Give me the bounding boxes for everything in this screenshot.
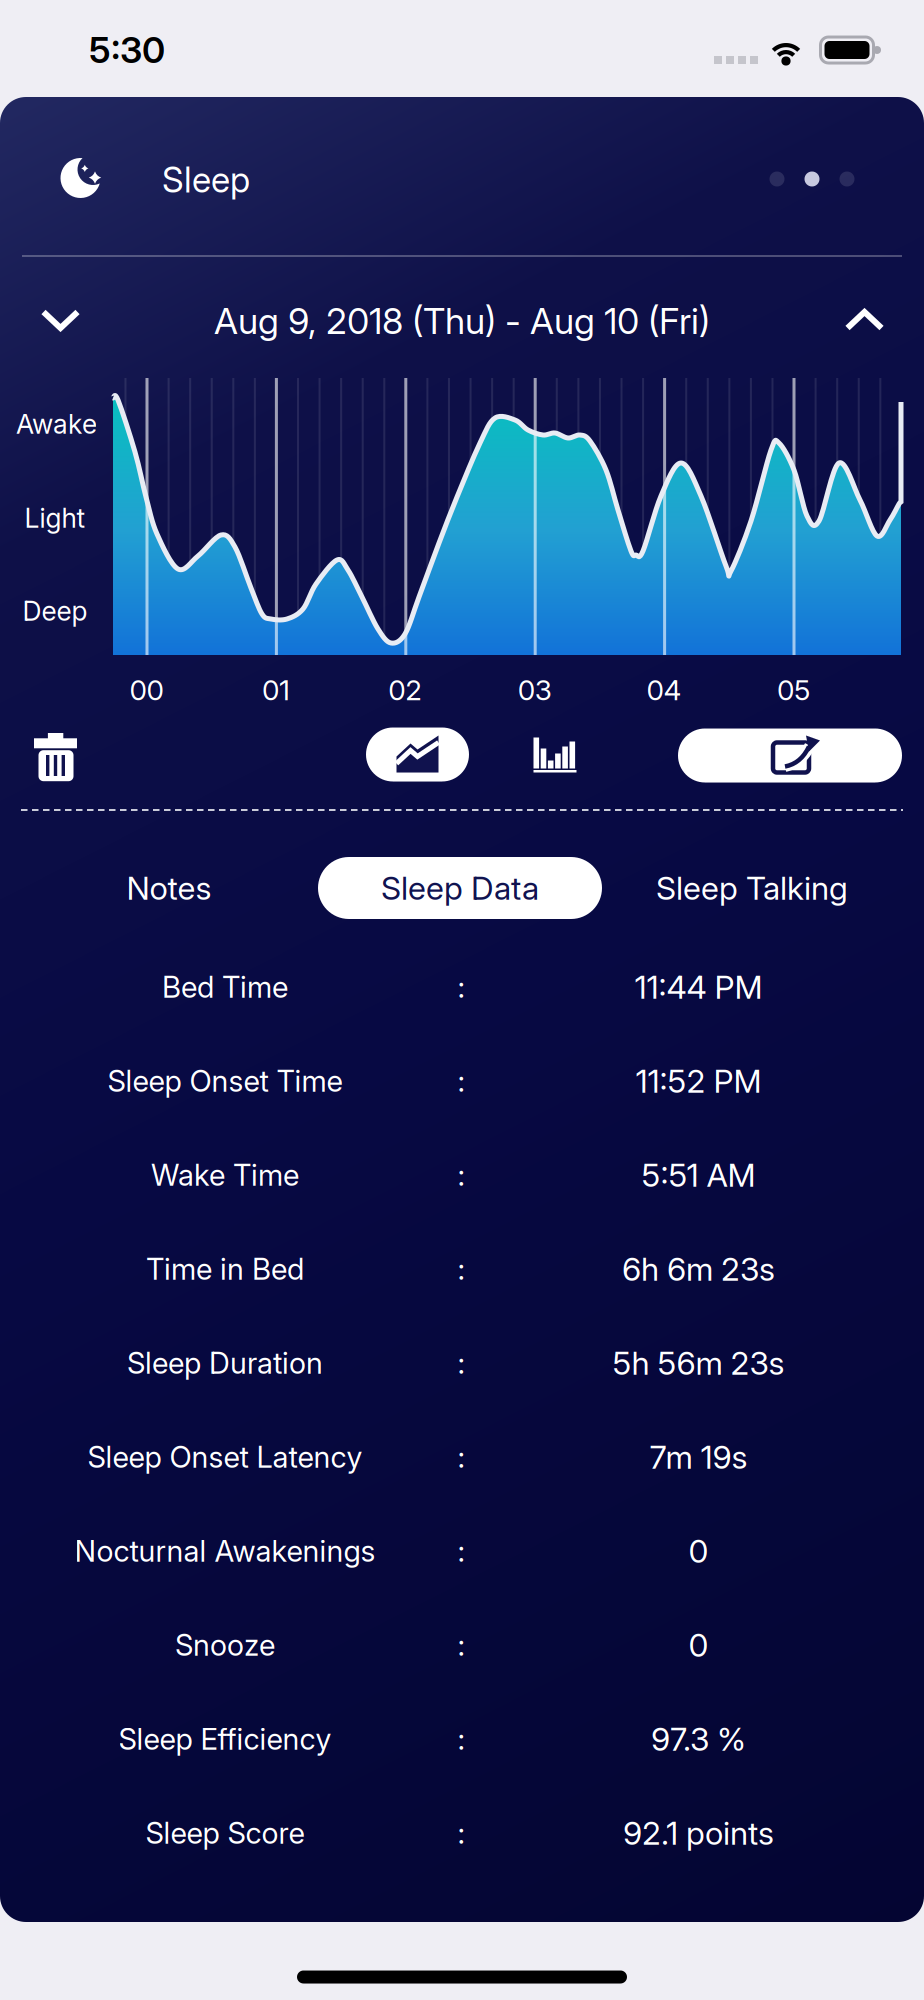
button[interactable]: Sleep Data (318, 857, 602, 919)
button[interactable] (40, 307, 80, 333)
staticText: Time in Bed (146, 1252, 304, 1286)
staticText: 7m 19s (649, 1438, 747, 1476)
staticText: 0 (688, 1532, 708, 1570)
staticText: : (457, 1628, 465, 1662)
staticText: Sleep Onset Latency (87, 1440, 362, 1474)
staticText: 00 (129, 673, 163, 706)
staticText: 0 (688, 1626, 708, 1664)
staticText: Snooze (175, 1628, 275, 1662)
button[interactable] (56, 154, 104, 202)
staticText: Notes (126, 869, 211, 907)
button[interactable] (678, 728, 902, 782)
staticText: 03 (518, 673, 552, 706)
staticText: Nocturnal Awakenings (74, 1534, 375, 1568)
button[interactable] (366, 727, 469, 781)
staticText: Sleep Duration (127, 1346, 323, 1380)
staticText: Sleep (162, 160, 250, 200)
button[interactable] (844, 307, 884, 333)
staticText: : (457, 1252, 465, 1286)
staticText: Sleep Data (381, 869, 539, 907)
staticText: 02 (388, 673, 422, 706)
staticText: 11:52 PM (635, 1062, 761, 1100)
staticText: Sleep Talking (656, 869, 848, 907)
staticText: 5:30 (89, 29, 165, 71)
staticText: : (457, 970, 465, 1004)
staticText: Sleep Score (145, 1816, 304, 1850)
staticText: Bed Time (162, 970, 288, 1004)
staticText: : (457, 1440, 465, 1474)
staticText: Awake (16, 408, 97, 440)
staticText: Deep (22, 595, 87, 627)
staticText: 01 (262, 673, 290, 706)
staticText: Sleep Onset Time (107, 1064, 342, 1098)
button[interactable] (533, 737, 576, 772)
staticText: 5h 56m 23s (612, 1344, 784, 1382)
staticText: Light (24, 502, 85, 534)
staticText: : (457, 1158, 465, 1192)
staticText: 92.1 points (623, 1814, 774, 1852)
staticText: : (457, 1064, 465, 1098)
staticText: Wake Time (151, 1158, 299, 1192)
button[interactable] (297, 1970, 627, 1983)
staticText: : (457, 1346, 465, 1380)
staticText: Aug 9, 2018 (Thu) - Aug 10 (Fri) (214, 300, 710, 342)
staticText: 05 (777, 673, 810, 706)
staticText: Sleep Efficiency (118, 1722, 331, 1756)
button[interactable] (769, 171, 854, 186)
staticText: 97.3 % (651, 1720, 746, 1758)
button[interactable] (33, 733, 77, 782)
button[interactable]: Notes (79, 857, 259, 919)
staticText: : (457, 1722, 465, 1756)
staticText: : (457, 1816, 465, 1850)
staticText: 6h 6m 23s (622, 1250, 775, 1288)
staticText: 04 (647, 673, 682, 706)
staticText: : (457, 1534, 465, 1568)
button[interactable]: Sleep Talking (632, 857, 872, 919)
staticText: 5:51 AM (641, 1156, 755, 1194)
staticText: 11:44 PM (634, 968, 762, 1006)
